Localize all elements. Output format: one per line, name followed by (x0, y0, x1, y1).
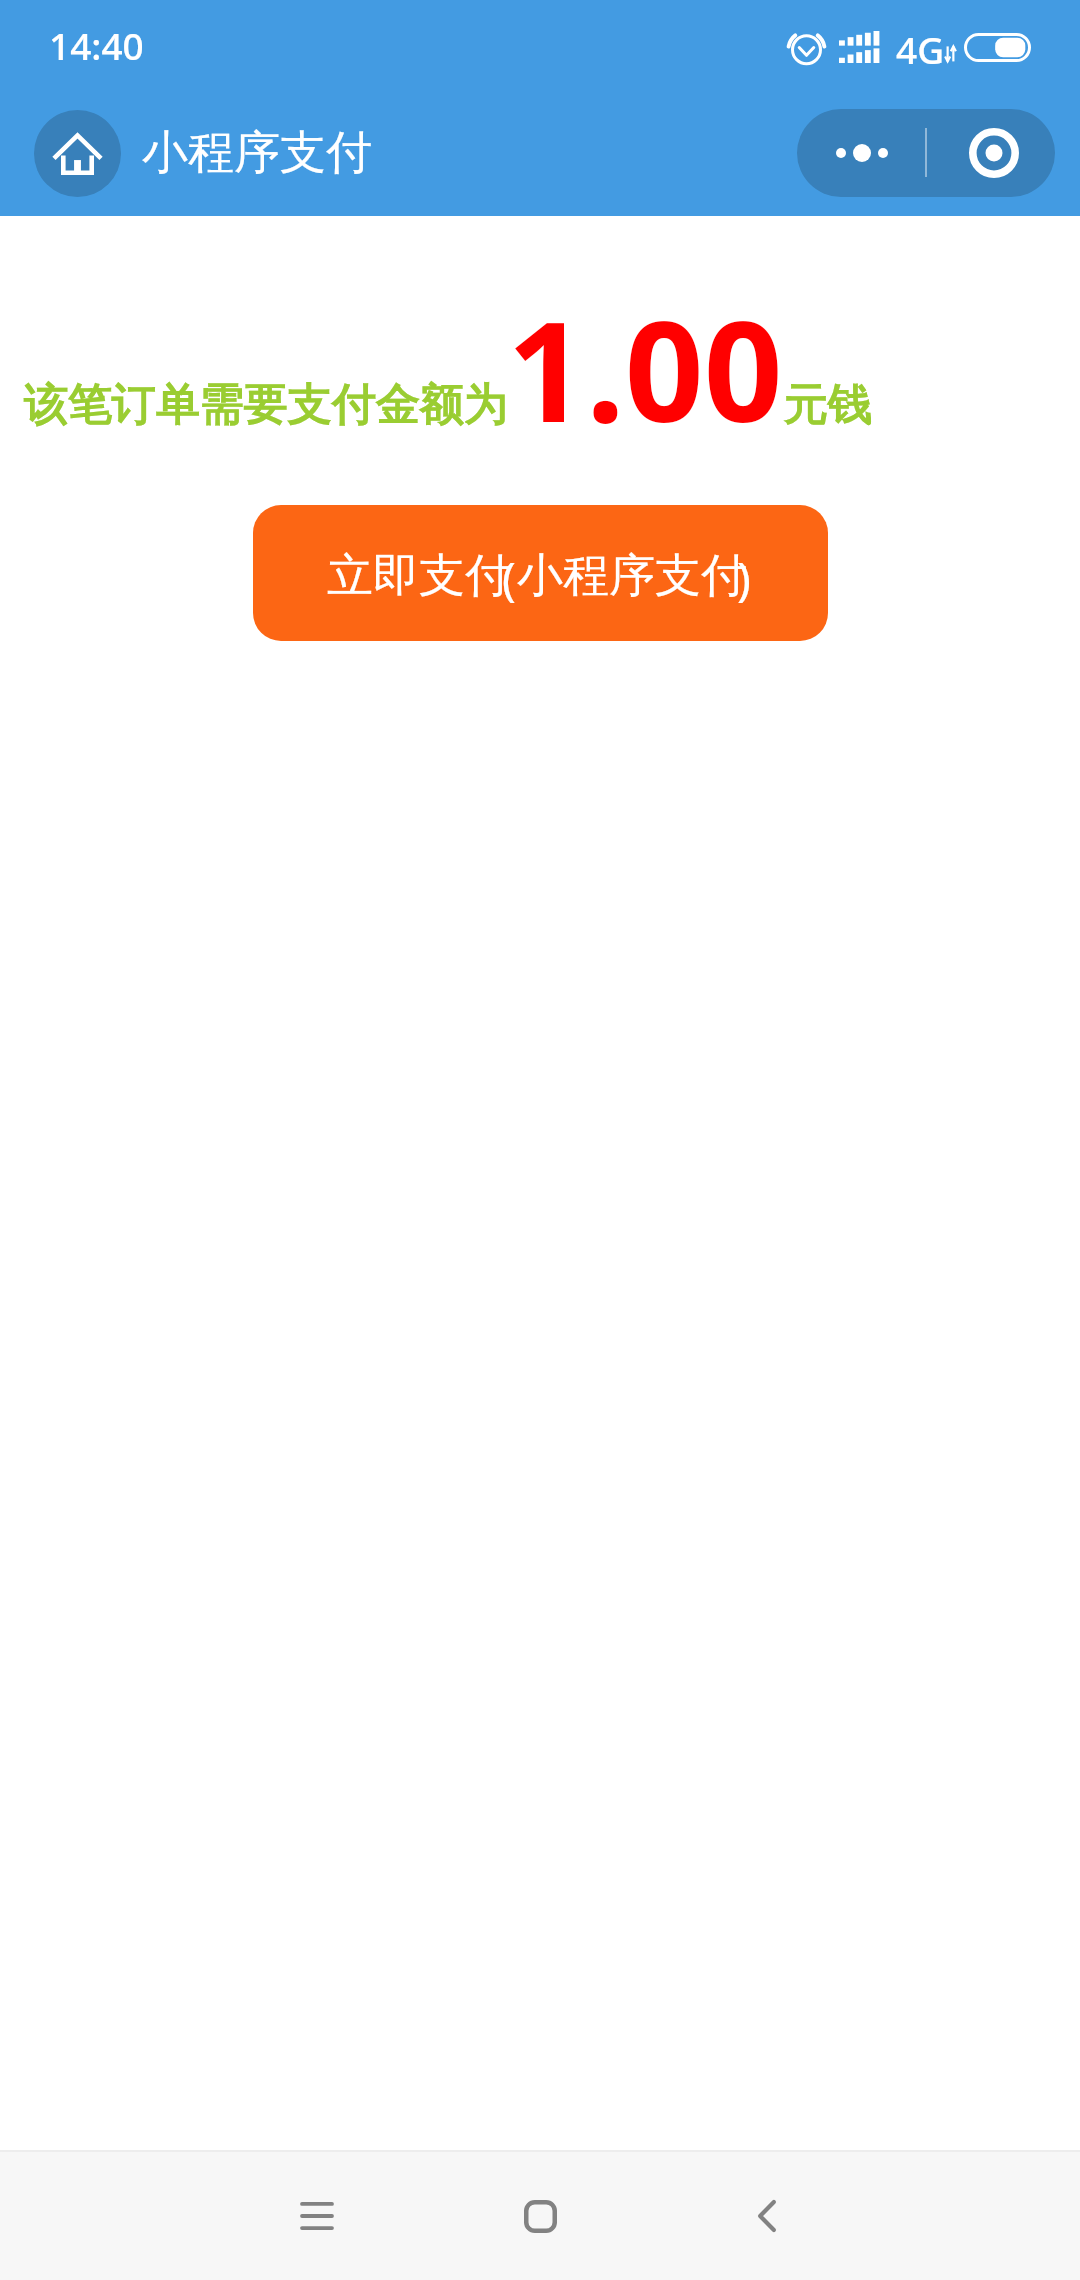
staticText: 该笔订单需要支付金额为 (24, 377, 508, 432)
staticText: ) (737, 547, 751, 610)
button[interactable]: Home (480, 2152, 600, 2280)
staticText: 4G (896, 24, 945, 70)
staticText: 元钱 (784, 377, 872, 432)
staticText: 元钱 (784, 377, 872, 432)
staticText: 小程序支付 (517, 547, 747, 605)
staticText: 该笔订单需要支付金额为 (24, 377, 508, 432)
staticText: 小程序支付 (142, 124, 372, 182)
staticText: ( (502, 547, 516, 610)
button[interactable]: More options (797, 109, 926, 197)
button[interactable]: Close mini program (926, 109, 1055, 197)
staticText: 立即支付 (327, 547, 511, 605)
button[interactable]: Recent apps (257, 2152, 377, 2280)
button[interactable]: Back (707, 2152, 827, 2280)
button[interactable]: 立即支付 (253, 505, 828, 641)
staticText: 1.00 (507, 274, 783, 462)
staticText: 14:40 (49, 20, 144, 70)
button[interactable]: 小程序支付 (34, 109, 372, 197)
